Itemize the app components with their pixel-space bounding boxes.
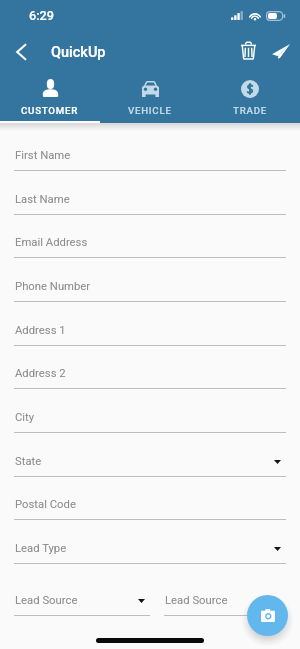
button[interactable]: Lead Type [14, 542, 286, 564]
staticText: Email Address [15, 236, 88, 249]
staticText: Address 2 [15, 367, 66, 380]
staticText: 6:29 [29, 8, 54, 23]
staticText: Last Name [15, 193, 70, 206]
staticText: City [15, 411, 35, 424]
staticText: Postal Code [15, 498, 76, 511]
button[interactable]: Back [8, 39, 34, 65]
button[interactable]: Delete [235, 37, 261, 63]
button[interactable]: Address 1 [14, 324, 286, 346]
staticText: CUSTOMER [21, 105, 79, 116]
staticText: Lead Source [15, 594, 78, 607]
staticText: State [15, 455, 42, 468]
button[interactable]: City [14, 411, 286, 433]
button[interactable]: CUSTOMER [0, 72, 100, 123]
staticText: Lead Type [15, 542, 67, 555]
button[interactable]: Lead Source [164, 594, 286, 616]
button[interactable]: State [14, 455, 286, 477]
button[interactable]: VEHICLE [100, 72, 200, 123]
staticText: QuickUp [51, 44, 106, 61]
button[interactable]: Lead Source [14, 594, 150, 616]
button[interactable]: Send [268, 38, 294, 64]
staticText: Phone Number [15, 280, 91, 293]
button[interactable]: TRADE [200, 72, 300, 123]
button[interactable]: Postal Code [14, 498, 286, 520]
button[interactable]: First Name [14, 149, 286, 171]
button[interactable]: Address 2 [14, 367, 286, 389]
button[interactable]: Last Name [14, 193, 286, 215]
button[interactable]: Email Address [14, 236, 286, 258]
staticText: Address 1 [15, 324, 66, 337]
button[interactable]: Phone Number [14, 280, 286, 302]
button[interactable]: Take photo [247, 595, 288, 636]
staticText: Lead Source [165, 594, 228, 607]
staticText: First Name [15, 149, 71, 162]
staticText: VEHICLE [128, 105, 172, 116]
staticText: TRADE [233, 105, 267, 116]
